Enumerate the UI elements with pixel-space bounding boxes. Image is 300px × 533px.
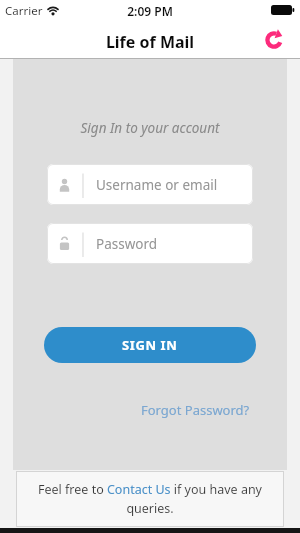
button[interactable] bbox=[260, 26, 288, 54]
staticText: Username or email bbox=[96, 176, 218, 194]
staticText: 2:09 PM bbox=[0, 3, 300, 19]
button[interactable]: Username or email bbox=[47, 164, 253, 205]
staticText: Life of Mail bbox=[0, 31, 300, 53]
button[interactable]: Forgot Password? bbox=[140, 398, 256, 422]
button[interactable]: Password bbox=[47, 223, 253, 264]
button[interactable]: SIGN IN bbox=[44, 327, 256, 363]
staticText: SIGN IN bbox=[122, 336, 178, 354]
staticText: Password bbox=[96, 235, 158, 253]
staticText: Feel free to Contact Us if you have any … bbox=[38, 481, 262, 517]
staticText: Sign In to your account bbox=[0, 119, 300, 137]
staticText: Forgot Password? bbox=[141, 401, 250, 419]
staticText: Carrier bbox=[5, 3, 43, 19]
button[interactable]: Feel free to Contact Us if you have any … bbox=[16, 471, 284, 527]
